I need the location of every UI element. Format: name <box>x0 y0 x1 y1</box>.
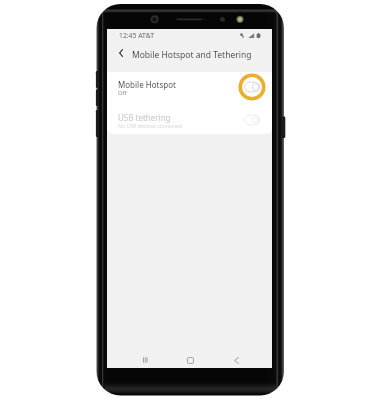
button[interactable]: Mobile Hotspot <box>107 72 272 103</box>
staticText: Mobile Hotspot <box>118 79 176 90</box>
staticText: 12:45 AT&T <box>119 31 154 40</box>
button[interactable]: Back <box>227 351 245 369</box>
button[interactable]: Toggle switch <box>238 106 266 134</box>
button[interactable]: Recent apps <box>136 351 154 369</box>
staticText: Mobile Hotspot and Tethering <box>132 49 252 61</box>
button[interactable]: Toggle switch <box>238 73 266 101</box>
staticText: USB tethering <box>118 112 171 123</box>
button[interactable]: Navigate up <box>110 42 132 64</box>
staticText: No USB devices connected <box>118 122 183 129</box>
button[interactable]: Home <box>181 351 199 369</box>
staticText: Off <box>118 89 127 97</box>
button[interactable]: USB tethering <box>107 103 272 133</box>
